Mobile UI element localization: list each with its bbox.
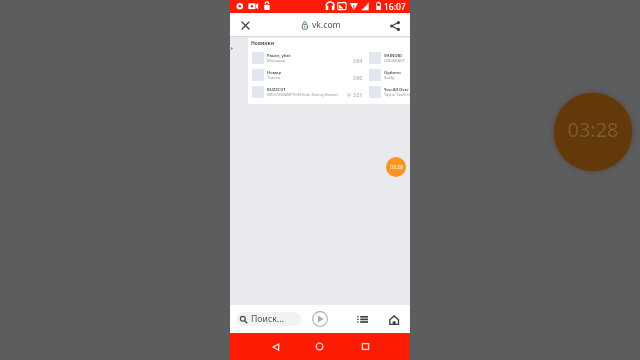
staticText: 16:07 bbox=[384, 1, 406, 13]
staticText: Молодая bbox=[267, 58, 286, 64]
staticText: Поиск... bbox=[251, 313, 284, 325]
button[interactable]: Home bbox=[312, 339, 327, 354]
staticText: Орбиты bbox=[384, 70, 401, 76]
button[interactable]: Орбиты bbox=[369, 69, 410, 86]
staticText: Номер bbox=[267, 70, 282, 76]
button[interactable]: Playlist bbox=[354, 310, 372, 328]
button[interactable]: Номер bbox=[252, 69, 365, 86]
button[interactable]: Play bbox=[311, 310, 329, 328]
button[interactable]: 03:28 bbox=[567, 116, 619, 143]
staticText: 3:04 bbox=[353, 58, 363, 64]
button[interactable]: BUZZCUT bbox=[252, 86, 365, 103]
staticText: BROCKHAMPTON feat. Danny Brown bbox=[267, 92, 338, 98]
button[interactable]: Поиск... bbox=[236, 312, 301, 326]
button[interactable]: Share bbox=[386, 17, 403, 34]
staticText: SHINOBI bbox=[384, 53, 402, 59]
staticText: Ранее, ybet bbox=[267, 53, 291, 59]
staticText: Taylor Swift fea bbox=[384, 92, 410, 98]
staticText: 03:28 bbox=[390, 164, 403, 171]
staticText: Тиесто bbox=[267, 75, 281, 81]
button[interactable]: Recording timer bbox=[386, 157, 406, 177]
staticText: vk.com bbox=[312, 19, 341, 31]
staticText: You All Over Me bbox=[384, 87, 410, 93]
staticText: 3:00 bbox=[353, 75, 363, 81]
staticText: Новинки bbox=[251, 40, 275, 47]
button[interactable]: Close bbox=[237, 17, 254, 34]
staticText: BUZZCUT bbox=[267, 87, 286, 93]
button[interactable]: Ранее, ybet bbox=[252, 52, 365, 69]
button[interactable]: Back bbox=[268, 339, 283, 354]
button[interactable]: Home bbox=[385, 311, 403, 329]
button[interactable]: Recent apps bbox=[358, 339, 373, 354]
staticText: 3:21 bbox=[353, 92, 363, 98]
button[interactable]: You All Over Me bbox=[369, 86, 410, 103]
staticText: OBLADAET bbox=[384, 58, 405, 64]
button[interactable]: SHINOBI bbox=[369, 52, 410, 69]
staticText: Scally bbox=[384, 75, 395, 81]
